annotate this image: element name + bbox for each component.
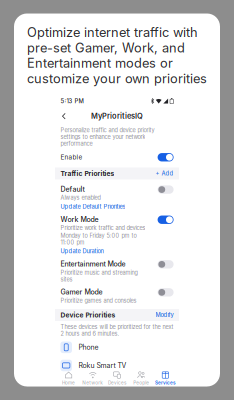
button[interactable]: Modify — [156, 311, 174, 318]
staticText: Traffic Priorities — [60, 169, 114, 177]
staticText: Gamer Mode — [60, 288, 102, 296]
staticText: Modify — [156, 311, 174, 318]
staticText: Update Duration — [60, 248, 103, 255]
button[interactable]: Work Mode — [60, 215, 174, 255]
staticText: Prioritize work traffic and devices — [60, 225, 145, 231]
staticText: Entertainment Mode — [60, 260, 125, 268]
staticText: Services — [155, 380, 176, 386]
staticText: + Add — [156, 170, 174, 177]
staticText: Monday to Friday 5:00 pm to 11:00 pm — [60, 232, 136, 246]
staticText: Phone — [79, 343, 99, 351]
button[interactable]: + Add — [156, 170, 174, 177]
staticText: Device Priorities — [60, 311, 115, 319]
button[interactable]: Entertainment Mode — [60, 260, 174, 283]
staticText: Prioritize games and consoles — [60, 297, 136, 304]
button[interactable]: Back — [60, 111, 67, 121]
staticText: People — [133, 380, 149, 386]
staticText: Default — [60, 185, 84, 193]
button[interactable]: Services — [153, 371, 177, 386]
staticText: Update Default Priorities — [60, 203, 125, 210]
button[interactable]: Gamer Mode — [60, 288, 174, 304]
staticText: Devices — [108, 380, 126, 386]
button[interactable]: Devices — [105, 371, 129, 386]
staticText: 5:13 PM — [60, 97, 83, 104]
staticText: Enable — [60, 153, 82, 161]
staticText: These devices will be prioritized for th… — [60, 323, 173, 337]
button[interactable]: Phone — [60, 341, 174, 353]
staticText: Prioritize music and streaming sites — [60, 269, 137, 283]
staticText: Work Mode — [60, 215, 98, 224]
staticText: Home — [62, 380, 75, 386]
staticText: MyPrioritiesIQ — [91, 112, 143, 121]
button[interactable]: Enable — [60, 147, 174, 161]
staticText: Optimize internet traffic with pre-set G… — [27, 24, 207, 86]
staticText: Always enabled — [60, 194, 100, 201]
button[interactable]: Network — [81, 371, 105, 386]
staticText: Network — [82, 380, 103, 386]
button[interactable]: Default — [60, 185, 174, 210]
staticText: Personalize traffic and device priority … — [60, 127, 154, 147]
button[interactable]: People — [129, 371, 153, 386]
staticText: Roku Smart TV — [79, 361, 127, 370]
button[interactable]: Roku Smart TV — [60, 360, 174, 371]
button[interactable]: Home — [56, 371, 81, 386]
